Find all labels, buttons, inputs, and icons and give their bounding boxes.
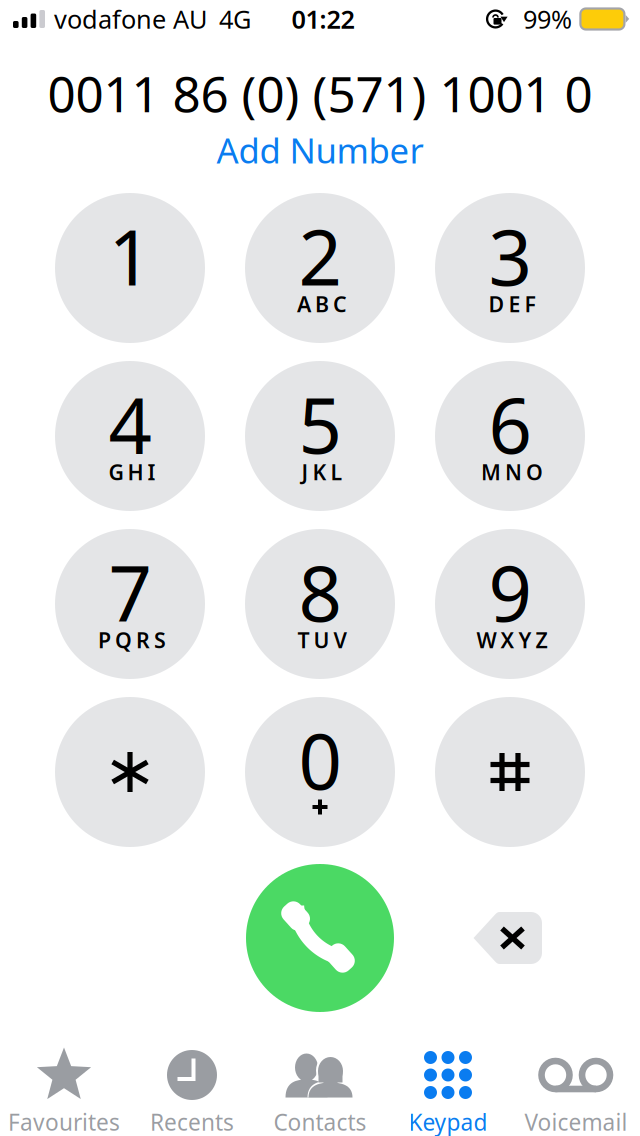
staticText: Keypad xyxy=(408,1107,487,1136)
staticText: Contacts xyxy=(273,1107,366,1136)
staticText: Add Number xyxy=(216,127,423,173)
button[interactable]: Contacts xyxy=(256,1032,384,1136)
staticText: 0 xyxy=(298,709,341,810)
button[interactable]: 0 xyxy=(245,697,395,847)
staticText: 3 xyxy=(488,205,531,306)
staticText: 9 xyxy=(488,541,531,642)
staticText: 8 xyxy=(298,541,341,642)
button[interactable]: 3 xyxy=(435,193,585,343)
staticText: WXYZ xyxy=(476,626,547,654)
button[interactable]: 9 xyxy=(435,529,585,679)
staticText: ABC xyxy=(297,290,347,318)
button[interactable]: 8 xyxy=(245,529,395,679)
staticText: 4G xyxy=(219,2,251,36)
staticText: TUV xyxy=(297,626,346,654)
staticText: 4 xyxy=(108,373,151,474)
staticText: Recents xyxy=(150,1107,234,1136)
button[interactable]: Call xyxy=(246,864,394,1012)
staticText: 0011 86 (0) (571) 1001 0 xyxy=(47,60,592,126)
staticText: PQRS xyxy=(98,626,166,654)
staticText: JKL xyxy=(301,458,342,486)
staticText: 2 xyxy=(298,205,341,306)
button[interactable]: Keypad xyxy=(384,1032,512,1136)
button[interactable] xyxy=(435,697,585,847)
button[interactable]: 2 xyxy=(245,193,395,343)
staticText: Favourites xyxy=(8,1107,120,1136)
button[interactable]: 7 xyxy=(55,529,205,679)
staticText: 6 xyxy=(488,373,531,474)
staticText: GHI xyxy=(108,458,155,486)
staticText: MNO xyxy=(481,458,543,486)
button[interactable]: 6 xyxy=(435,361,585,511)
button[interactable]: Recents xyxy=(128,1032,256,1136)
staticText: 1 xyxy=(108,205,151,306)
button[interactable]: 5 xyxy=(245,361,395,511)
staticText: 5 xyxy=(298,373,341,474)
button[interactable]: Add Number xyxy=(170,127,470,173)
staticText: 7 xyxy=(108,541,151,642)
button[interactable] xyxy=(55,697,205,847)
staticText: Voicemail xyxy=(524,1107,627,1136)
button[interactable]: Delete xyxy=(472,912,542,964)
staticText: 99% xyxy=(523,2,572,36)
staticText: vodafone AU xyxy=(54,2,208,36)
button[interactable]: Voicemail xyxy=(512,1032,640,1136)
button[interactable]: 1 xyxy=(55,193,205,343)
staticText: DEF xyxy=(488,290,535,318)
staticText: 01:22 xyxy=(291,2,354,36)
button[interactable]: 4 xyxy=(55,361,205,511)
button[interactable]: Favourites xyxy=(0,1032,128,1136)
